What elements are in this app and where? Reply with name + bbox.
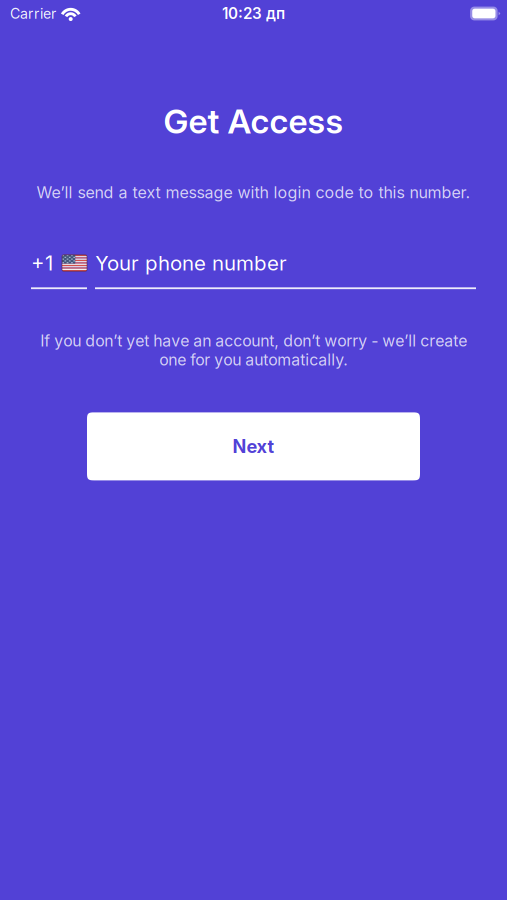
staticText: We’ll send a text message with login cod…: [36, 183, 470, 202]
button[interactable]: Country code +1, United States: [31, 252, 87, 289]
staticText: +1: [31, 251, 53, 275]
staticText: Get Access: [163, 101, 343, 142]
button[interactable]: Next: [87, 412, 420, 480]
staticText: 10:23 дп: [222, 4, 285, 23]
staticText: Your phone number: [95, 251, 287, 275]
staticText: Next: [232, 435, 274, 457]
button[interactable]: Your phone number: [95, 252, 476, 289]
staticText: Carrier: [10, 5, 56, 22]
staticText: If you don’t yet have an account, don’t …: [40, 331, 467, 369]
